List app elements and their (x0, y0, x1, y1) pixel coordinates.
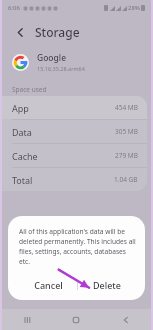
staticText: 454 MB (115, 103, 138, 112)
button[interactable]: Data (2, 120, 147, 143)
staticText: App (12, 102, 29, 114)
staticText: 279 MB (115, 151, 138, 160)
button[interactable]: Back (10, 22, 30, 42)
button[interactable]: App (2, 96, 147, 119)
staticText: 305 MB (115, 127, 138, 136)
staticText: Cache (12, 150, 38, 162)
button[interactable]: Total (2, 168, 147, 191)
button[interactable]: Home (51, 309, 101, 330)
staticText: All of this application's data will be d… (19, 227, 136, 266)
staticText: Storage (35, 24, 80, 40)
button[interactable]: Back (101, 309, 151, 330)
staticText: 1.04 GB (114, 175, 138, 184)
staticText: 6:06 (8, 4, 20, 12)
staticText: Cancel (34, 279, 63, 291)
button[interactable]: Google (2, 48, 151, 76)
button[interactable]: Delete (78, 275, 136, 295)
button[interactable]: Recents (2, 309, 51, 330)
staticText: 28% (128, 4, 140, 12)
staticText: Delete (93, 279, 121, 291)
staticText: Google (37, 52, 67, 64)
staticText: Total (12, 174, 33, 186)
staticText: Space used (12, 85, 47, 94)
button[interactable]: Cache (2, 144, 147, 167)
staticText: 15.16.35.28.arm64 (37, 65, 85, 72)
staticText: Data (12, 126, 32, 138)
button[interactable]: Cancel (19, 275, 77, 295)
